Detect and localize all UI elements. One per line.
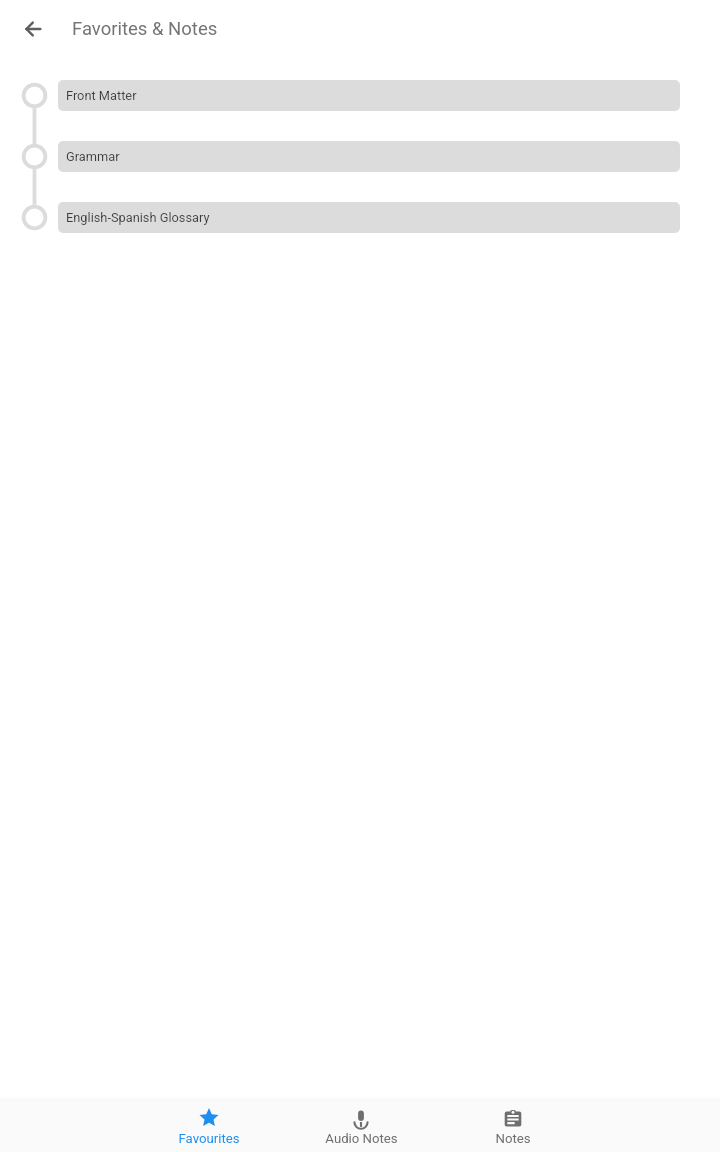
staticText: Favorites & Notes: [72, 18, 218, 40]
button[interactable]: Audio Notes: [285, 1101, 437, 1152]
staticText: English-Spanish Glossary: [66, 210, 210, 225]
staticText: Grammar: [66, 149, 120, 164]
button[interactable]: Navigate back: [12, 5, 60, 53]
staticText: Favourites: [178, 1131, 240, 1146]
button[interactable]: English-Spanish Glossary: [58, 202, 680, 233]
button[interactable]: Grammar: [58, 141, 680, 172]
button[interactable]: Favourites: [133, 1101, 285, 1152]
button[interactable]: Front Matter: [58, 80, 680, 111]
staticText: Front Matter: [66, 88, 137, 103]
button[interactable]: Notes: [437, 1101, 589, 1152]
staticText: Audio Notes: [325, 1131, 398, 1146]
staticText: Notes: [495, 1131, 531, 1146]
